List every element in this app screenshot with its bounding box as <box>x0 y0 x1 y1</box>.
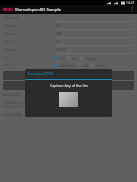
staticText: Pid <box>59 56 64 60</box>
staticText: Pid Ver <box>4 40 15 44</box>
button[interactable]: Format <box>0 30 137 38</box>
staticText: Timeout <box>4 48 17 52</box>
button[interactable]: START IRIS CAPTURE <box>3 71 134 80</box>
staticText: XML <box>56 31 63 36</box>
staticText: AP <box>56 23 61 28</box>
button[interactable]: Right <box>91 63 105 67</box>
staticText: DEVICE INFO <box>58 83 79 88</box>
staticText: 10000 <box>56 47 66 52</box>
staticText: BiomatiquesRD Sample <box>15 7 62 13</box>
staticText: Env <box>4 56 10 60</box>
staticText: BiomatiquesRDSDK <box>27 72 54 76</box>
button[interactable]: Unknown <box>54 63 74 67</box>
staticText: Bio <box>72 56 77 60</box>
button[interactable]: More options <box>127 5 136 14</box>
staticText: Pos <box>4 63 10 67</box>
staticText: Unknown <box>59 63 74 67</box>
staticText: <PidOptions ver="1.0"><Opts <box>3 101 47 105</box>
staticText: 14:21 <box>126 0 135 5</box>
button[interactable]: Left <box>77 63 88 67</box>
button[interactable]: Iris Type <box>0 22 137 30</box>
staticText: 1 <box>56 15 58 20</box>
staticText: Format <box>4 32 15 36</box>
staticText: Iris Count <box>4 16 19 20</box>
button[interactable]: Pid <box>54 56 64 60</box>
staticText: Iris Type <box>4 24 17 28</box>
staticText: 1.0 <box>56 39 61 44</box>
staticText: Staging <box>85 56 97 60</box>
button[interactable]: Bio <box>67 56 77 60</box>
staticText: Right <box>96 63 105 67</box>
button[interactable]: Staging <box>80 56 97 60</box>
staticText: fCount="1" fType="0" iCount= <box>3 105 48 109</box>
staticText: Input XML: <box>3 92 21 97</box>
button[interactable]: Iris Count <box>0 14 137 22</box>
staticText: Left <box>82 63 88 67</box>
button[interactable]: Timeout <box>0 46 137 54</box>
staticText: Capture Any of the Iris <box>50 83 88 88</box>
staticText: Output XML: <box>3 112 24 117</box>
button[interactable]: DEVICE INFO <box>3 81 134 90</box>
button[interactable]: Pid Ver <box>0 38 137 46</box>
staticText: START IRIS CAPTURE <box>52 73 85 78</box>
